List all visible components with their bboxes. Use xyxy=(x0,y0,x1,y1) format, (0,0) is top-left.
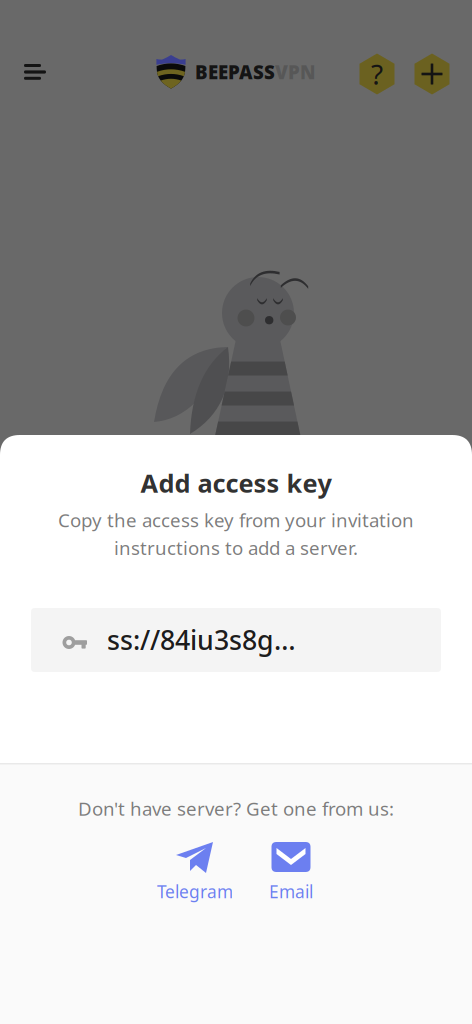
staticText: instructions to add a server. xyxy=(114,535,358,560)
staticText: ss://84iu3s8g… xyxy=(107,622,296,657)
staticText: Add access key xyxy=(140,466,331,500)
staticText: Email xyxy=(269,880,313,903)
button[interactable]: Menu xyxy=(13,50,57,94)
staticText: Copy the access key from your invitation xyxy=(58,508,414,532)
button[interactable]: Telegram xyxy=(135,842,255,903)
staticText: Telegram xyxy=(157,880,233,903)
staticText: VPN xyxy=(275,60,316,84)
button[interactable]: Help xyxy=(359,53,395,95)
staticText: ? xyxy=(371,55,383,93)
button[interactable]: Email xyxy=(251,842,331,903)
button[interactable]: Add server xyxy=(414,53,450,95)
staticText: Don't have server? Get one from us: xyxy=(78,796,394,821)
staticText: BEEPASS xyxy=(195,60,275,84)
